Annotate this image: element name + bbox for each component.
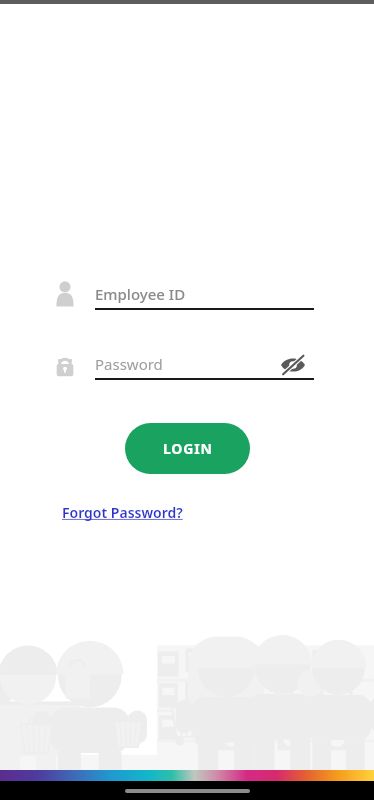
button[interactable]: Forgot Password?: [62, 501, 183, 523]
staticText: Employee ID: [95, 284, 186, 304]
button[interactable]: LOGIN: [125, 423, 250, 474]
button[interactable]: Employee ID: [95, 281, 314, 310]
staticText: Forgot Password?: [62, 503, 183, 522]
button[interactable]: Password: [95, 351, 314, 380]
staticText: LOGIN: [163, 439, 213, 458]
button[interactable]: Show password: [278, 352, 308, 378]
staticText: Password: [95, 354, 163, 374]
